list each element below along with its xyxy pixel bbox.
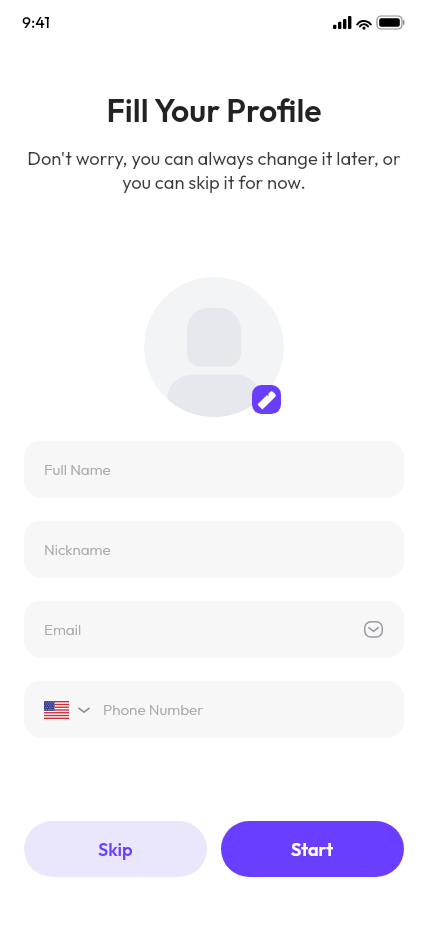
staticText: Email	[44, 620, 82, 639]
staticText: Full Name	[44, 460, 111, 479]
staticText: 9:41	[22, 12, 51, 32]
staticText: Don't worry, you can always change it la…	[0, 147, 428, 194]
button[interactable]: Skip	[24, 821, 207, 877]
button[interactable]: Start	[221, 821, 404, 877]
staticText: Nickname	[44, 540, 111, 559]
staticText: Start	[291, 838, 334, 861]
button[interactable]: Edit profile picture	[252, 385, 281, 414]
button[interactable]: Phone Number	[24, 681, 404, 737]
button[interactable]: Email	[353, 609, 393, 649]
button[interactable]: Full Name	[24, 441, 404, 497]
button[interactable]: Nickname	[24, 521, 404, 577]
button[interactable]: Email	[24, 601, 404, 657]
staticText: Phone Number	[103, 700, 204, 719]
staticText: Skip	[98, 838, 133, 861]
staticText: Fill Your Profile	[0, 90, 428, 130]
